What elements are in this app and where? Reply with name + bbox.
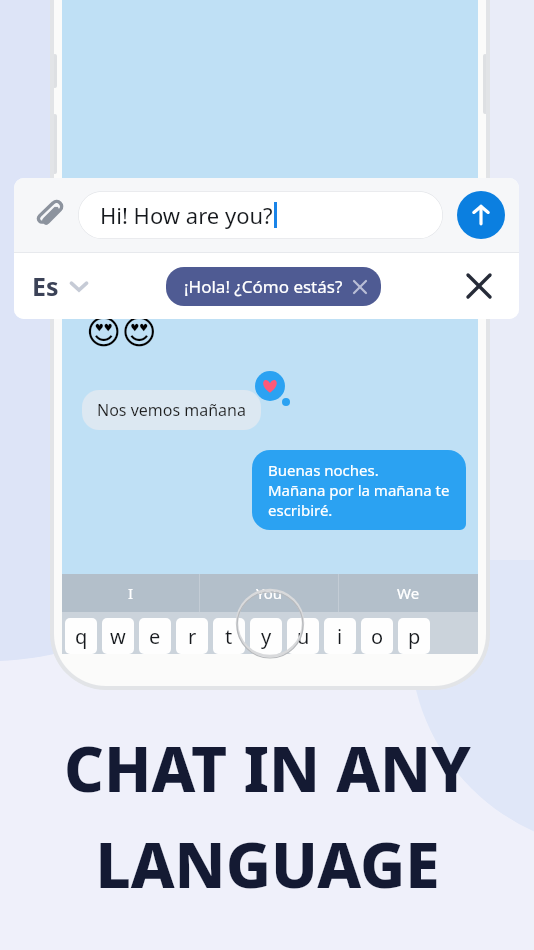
button[interactable]: e	[139, 618, 171, 654]
button[interactable]: Close	[457, 264, 501, 308]
staticText: u	[297, 623, 310, 650]
staticText: w	[110, 623, 126, 650]
button[interactable]: ¡Hola! ¿Cómo estás?	[166, 267, 381, 306]
staticText: q	[75, 623, 88, 650]
button[interactable]: t	[213, 618, 245, 654]
staticText: Es	[32, 269, 59, 303]
staticText: I	[128, 583, 134, 603]
staticText: i	[337, 623, 343, 650]
button[interactable]: q	[65, 618, 97, 654]
staticText: y	[261, 623, 272, 650]
button[interactable]: You	[200, 574, 339, 612]
staticText: r	[188, 623, 197, 650]
button[interactable]: We	[339, 574, 478, 612]
button[interactable]: r	[176, 618, 208, 654]
staticText: e	[149, 623, 161, 650]
button[interactable]: Hi! How are you?	[78, 191, 443, 239]
staticText: Buenas noches. Mañana por la mañana te e…	[268, 460, 450, 520]
button[interactable]: p	[398, 618, 430, 654]
staticText: LANGUAGE	[95, 822, 440, 906]
button[interactable]: Send	[457, 191, 505, 239]
staticText: You	[256, 583, 283, 603]
staticText: ¡Hola! ¿Cómo estás?	[184, 275, 343, 298]
button[interactable]: i	[324, 618, 356, 654]
staticText: 😍😍	[86, 312, 157, 352]
staticText: o	[371, 623, 384, 650]
staticText: Hi! How are you?	[100, 200, 273, 230]
button[interactable]: Attach file	[28, 193, 72, 237]
staticText: Nos vemos mañana	[97, 399, 246, 421]
button[interactable]: w	[102, 618, 134, 654]
button[interactable]: Es	[30, 261, 91, 311]
staticText: We	[397, 583, 420, 603]
button[interactable]: u	[287, 618, 319, 654]
staticText: p	[408, 623, 421, 650]
button[interactable]: I	[62, 574, 200, 612]
button[interactable]: o	[361, 618, 393, 654]
button[interactable]: y	[250, 618, 282, 654]
staticText: CHAT IN ANY	[64, 726, 471, 810]
staticText: t	[225, 623, 233, 650]
